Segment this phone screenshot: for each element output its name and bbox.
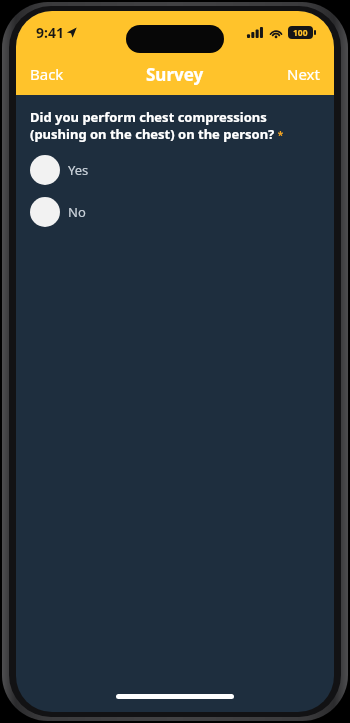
staticText: Back <box>30 64 64 84</box>
staticText: 100 <box>293 27 308 39</box>
staticText: Did you perform chest compressions (push… <box>30 108 320 143</box>
button[interactable]: Back <box>16 55 78 93</box>
staticText: Survey <box>146 63 204 86</box>
button[interactable]: Next <box>273 55 334 93</box>
button[interactable]: Yes <box>30 153 320 187</box>
staticText: Next <box>287 64 320 84</box>
staticText: 9:41 <box>36 23 64 42</box>
button[interactable]: No <box>30 195 320 229</box>
staticText: Yes <box>68 161 89 179</box>
staticText: No <box>68 203 86 221</box>
